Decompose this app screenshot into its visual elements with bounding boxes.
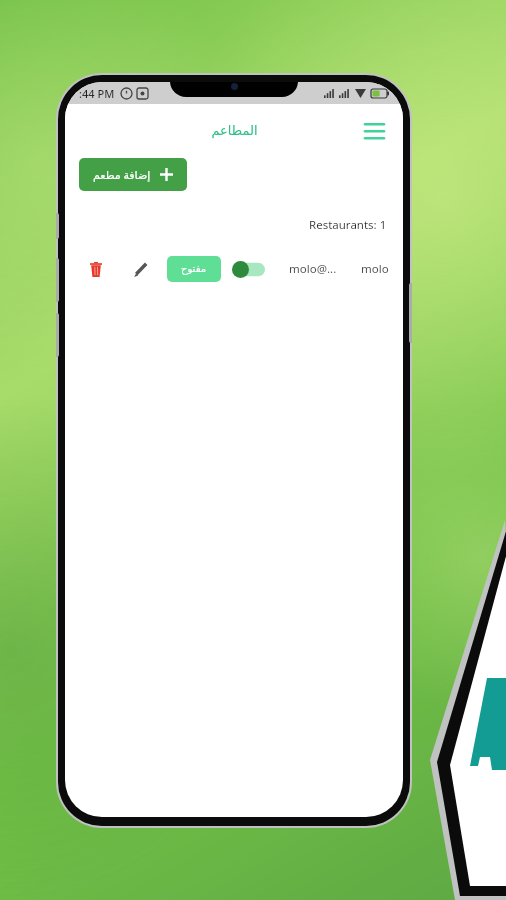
button[interactable]: إضافة مطعم: [79, 158, 187, 191]
button[interactable]: Toggle open: [232, 261, 265, 278]
staticText: molo@...: [289, 261, 337, 277]
staticText: مفتوح: [181, 263, 207, 275]
button[interactable]: Menu: [357, 113, 391, 147]
staticText: :44 PM: [79, 86, 115, 101]
staticText: المطاعم: [211, 123, 258, 138]
button[interactable]: Delete: [83, 256, 109, 282]
button[interactable]: مفتوح: [167, 256, 221, 282]
button[interactable]: Delete: [65, 247, 403, 291]
staticText: إضافة مطعم: [93, 167, 151, 182]
staticText: molo: [361, 261, 389, 277]
button[interactable]: Edit: [127, 256, 153, 282]
staticText: Restaurants: 1: [309, 217, 387, 233]
